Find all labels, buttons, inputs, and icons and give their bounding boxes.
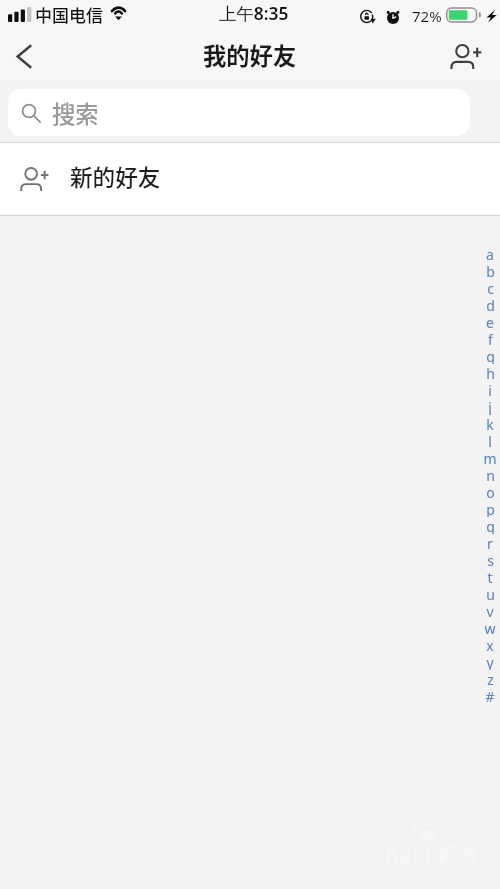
staticText: 72% (412, 6, 442, 26)
staticText: u (486, 585, 495, 602)
staticText: q (486, 517, 495, 534)
staticText: w (484, 619, 496, 636)
staticText: # (485, 687, 495, 704)
staticText: g (486, 347, 495, 364)
staticText: 中国电信 (35, 2, 103, 27)
staticText: v (486, 602, 494, 619)
staticText: 我的好友 (203, 38, 297, 72)
staticText: d (486, 296, 495, 313)
staticText: x (486, 636, 494, 653)
staticText: 搜索 (52, 96, 99, 130)
staticText: l (488, 432, 492, 449)
button[interactable]: 搜索 (8, 89, 470, 136)
staticText: 新的好友 (70, 160, 161, 193)
button[interactable]: 添加好友 (448, 32, 500, 81)
staticText: r (487, 534, 493, 551)
button[interactable]: 字母索引 (479, 245, 500, 889)
staticText: b (486, 262, 495, 279)
staticText: c (487, 279, 494, 296)
staticText: o (486, 483, 495, 500)
staticText: t (487, 568, 493, 585)
staticText: a (486, 245, 494, 262)
staticText: s (487, 551, 494, 568)
staticText: m (483, 449, 497, 466)
staticText: f (488, 330, 493, 347)
staticText: h (486, 364, 495, 381)
staticText: k (486, 415, 494, 432)
staticText: y (486, 653, 494, 670)
staticText: 上午8:35 (219, 1, 289, 25)
staticText: n (486, 466, 495, 483)
button[interactable]: 返回 (0, 32, 50, 81)
staticText: z (487, 670, 494, 687)
staticText: e (486, 313, 494, 330)
staticText: p (486, 500, 495, 517)
staticText: j (488, 398, 492, 415)
button[interactable]: 新的好友 (0, 143, 500, 215)
staticText: i (488, 381, 492, 398)
